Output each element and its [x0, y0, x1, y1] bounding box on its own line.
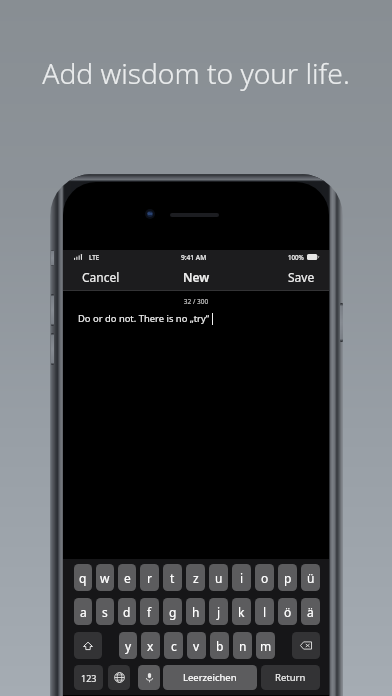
- button[interactable]: h: [186, 598, 205, 625]
- staticText: i: [240, 570, 244, 586]
- button[interactable]: b: [210, 632, 229, 659]
- button[interactable]: o: [255, 564, 274, 591]
- button[interactable]: g: [163, 598, 182, 625]
- button[interactable]: ü: [301, 564, 320, 591]
- button[interactable]: e: [118, 564, 136, 591]
- button[interactable]: i: [232, 564, 251, 591]
- button[interactable]: t: [163, 564, 182, 591]
- button[interactable]: p: [278, 564, 297, 591]
- staticText: ö: [284, 604, 292, 620]
- button[interactable]: r: [140, 564, 159, 591]
- button[interactable]: m: [256, 632, 275, 659]
- button[interactable]: Backspace: [292, 632, 320, 659]
- button[interactable]: w: [96, 564, 114, 591]
- staticText: ü: [307, 570, 315, 586]
- staticText: r: [147, 570, 152, 586]
- button[interactable]: ö: [278, 598, 297, 625]
- button[interactable]: Change keyboard: [108, 665, 130, 690]
- staticText: n: [239, 638, 247, 654]
- staticText: h: [192, 604, 200, 620]
- staticText: Leerzeichen: [183, 671, 237, 684]
- button[interactable]: n: [233, 632, 252, 659]
- staticText: k: [238, 604, 245, 620]
- button[interactable]: l: [255, 598, 274, 625]
- staticText: o: [261, 570, 269, 586]
- button[interactable]: s: [96, 598, 114, 625]
- staticText: 123: [81, 672, 97, 684]
- button[interactable]: 123: [74, 665, 103, 690]
- staticText: t: [170, 570, 175, 586]
- staticText: u: [215, 570, 223, 586]
- staticText: 32 / 300: [63, 297, 329, 306]
- button[interactable]: Dictate: [138, 665, 160, 690]
- button[interactable]: a: [74, 598, 92, 625]
- staticText: a: [80, 604, 87, 620]
- staticText: l: [263, 604, 267, 620]
- button[interactable]: u: [209, 564, 228, 591]
- staticText: Return: [275, 671, 306, 684]
- staticText: c: [171, 638, 177, 654]
- button[interactable]: ä: [301, 598, 320, 625]
- staticText: b: [216, 638, 224, 654]
- staticText: z: [193, 570, 199, 586]
- staticText: w: [100, 570, 110, 586]
- button[interactable]: Save: [283, 265, 320, 289]
- staticText: y: [125, 638, 132, 654]
- staticText: x: [147, 638, 154, 654]
- staticText: 9:41 AM: [181, 253, 207, 262]
- button[interactable]: Cancel: [77, 265, 125, 289]
- staticText: j: [217, 604, 221, 620]
- staticText: Add wisdom to your life.: [0, 54, 392, 92]
- staticText: p: [284, 570, 292, 586]
- staticText: 100%: [288, 253, 304, 261]
- staticText: g: [169, 604, 177, 620]
- staticText: e: [124, 570, 131, 586]
- staticText: Do or do not. There is no „try“: [78, 312, 210, 325]
- staticText: s: [102, 604, 108, 620]
- staticText: m: [260, 638, 272, 654]
- button[interactable]: q: [74, 564, 92, 591]
- staticText: ä: [307, 604, 314, 620]
- button[interactable]: Leerzeichen: [163, 665, 257, 690]
- staticText: New: [183, 269, 210, 285]
- staticText: Cancel: [82, 269, 120, 285]
- button[interactable]: c: [164, 632, 183, 659]
- button[interactable]: k: [232, 598, 251, 625]
- staticText: Save: [288, 269, 315, 285]
- staticText: v: [193, 638, 200, 654]
- staticText: LTE: [89, 253, 100, 261]
- button[interactable]: v: [187, 632, 206, 659]
- button[interactable]: Shift: [74, 632, 102, 659]
- staticText: d: [123, 604, 131, 620]
- button[interactable]: j: [209, 598, 228, 625]
- button[interactable]: d: [118, 598, 136, 625]
- staticText: q: [79, 570, 87, 586]
- staticText: f: [147, 604, 152, 620]
- button[interactable]: y: [119, 632, 137, 659]
- button[interactable]: Return: [261, 665, 320, 690]
- button[interactable]: f: [140, 598, 159, 625]
- button[interactable]: z: [186, 564, 205, 591]
- button[interactable]: x: [141, 632, 160, 659]
